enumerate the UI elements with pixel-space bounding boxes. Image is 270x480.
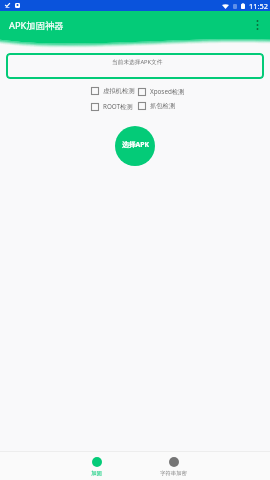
button[interactable]: 字符串加密 <box>135 456 212 476</box>
staticText: 当前未选择APK文件 <box>112 58 163 66</box>
button[interactable]: 抓包检测 <box>138 102 176 110</box>
staticText: 抓包检测 <box>150 102 176 110</box>
button[interactable]: 选择APK <box>115 126 155 166</box>
staticText: ROOT检测 <box>103 102 133 111</box>
staticText: 选择APK <box>122 140 150 149</box>
button[interactable]: More options <box>244 12 270 38</box>
button[interactable]: ROOT检测 <box>91 102 133 111</box>
staticText: Xposed检测 <box>150 87 185 96</box>
button[interactable]: 当前未选择APK文件 <box>6 53 264 79</box>
button[interactable]: 虚拟机检测 <box>91 87 135 95</box>
staticText: APK加固神器 <box>9 19 64 32</box>
button[interactable]: Xposed检测 <box>138 87 185 96</box>
button[interactable]: 加固 <box>58 456 135 476</box>
staticText: 虚拟机检测 <box>103 87 135 95</box>
staticText: 加固 <box>58 470 135 477</box>
staticText: 11:52 <box>249 1 268 11</box>
staticText: 字符串加密 <box>135 470 212 477</box>
